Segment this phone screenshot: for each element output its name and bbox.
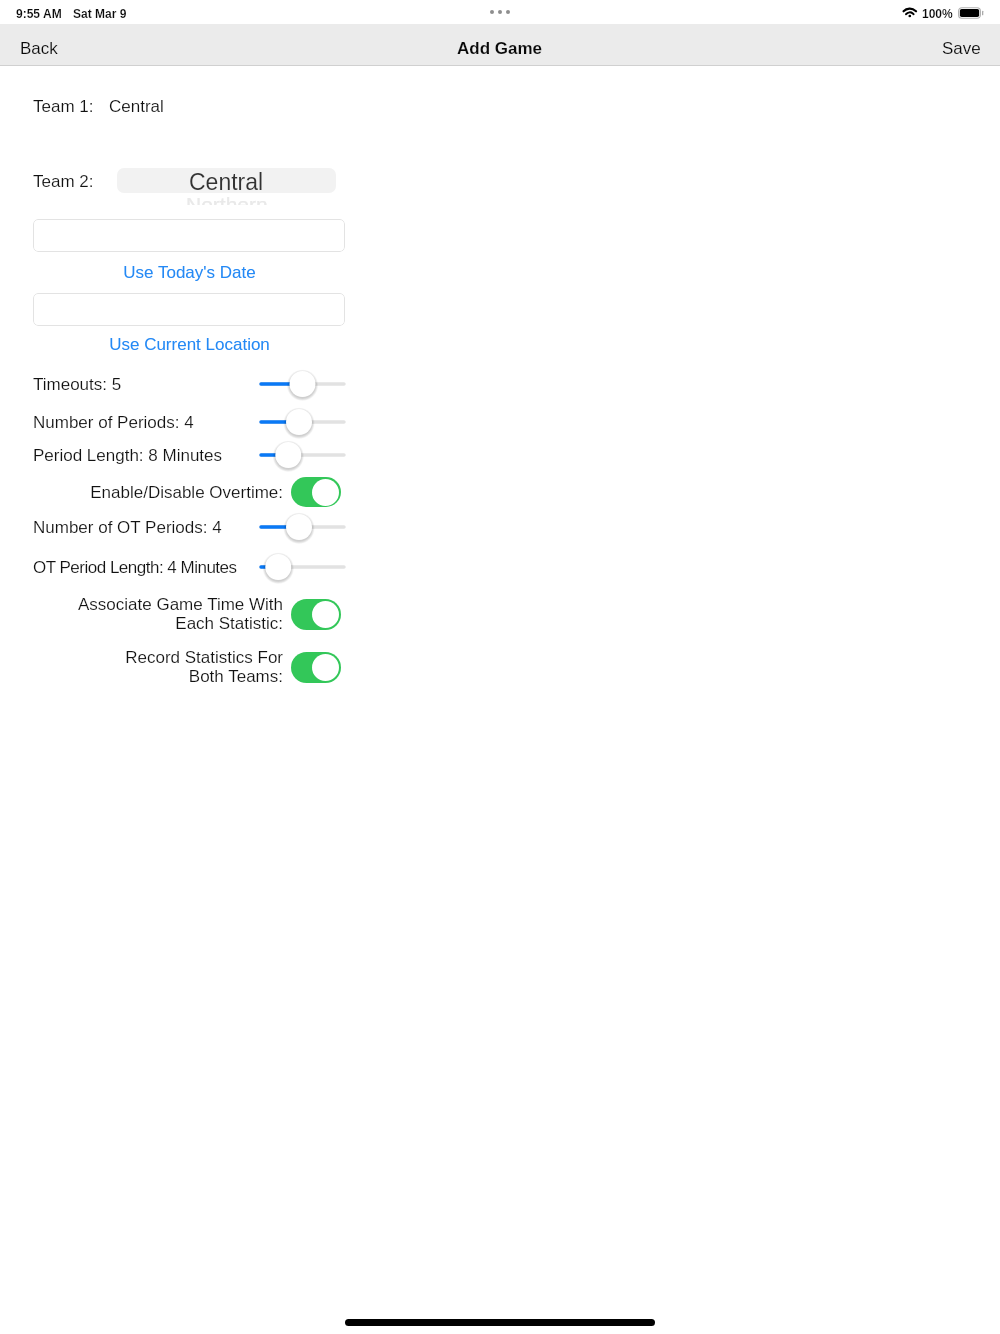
button[interactable] <box>33 219 345 252</box>
staticText: Use Today's Date <box>123 263 256 282</box>
button[interactable] <box>33 293 345 326</box>
button[interactable]: Enable/Disable Overtime: <box>291 477 341 507</box>
button[interactable]: Central <box>117 168 336 193</box>
staticText: AM <box>43 7 62 20</box>
staticText: Back <box>20 39 58 58</box>
button[interactable]: Period Length: 8 Minutes <box>248 440 357 470</box>
button[interactable]: Use Current Location <box>33 331 345 357</box>
staticText: Enable/Disable Overtime: <box>90 483 283 502</box>
staticText: Use Current Location <box>109 335 270 354</box>
button[interactable]: Number of Periods: 4 <box>248 407 357 437</box>
staticText: Number of Periods: 4 <box>33 413 194 432</box>
button[interactable]: Save <box>922 30 1000 67</box>
button[interactable]: OT Period Length: 4 Minutes <box>248 552 357 582</box>
staticText: Both Teams: <box>188 667 283 686</box>
staticText: Save <box>942 39 981 58</box>
staticText: Associate Game Time With <box>77 595 283 614</box>
staticText: Add Game <box>457 39 543 58</box>
staticText: Period Length: 8 Minutes <box>33 446 223 465</box>
staticText: Northern <box>186 193 268 205</box>
staticText: OT Period Length: 4 Minutes <box>33 558 237 577</box>
button[interactable]: Timeouts: 5 <box>248 369 357 399</box>
staticText: 9:55 <box>16 7 41 20</box>
staticText: Team 1: <box>33 97 94 116</box>
staticText: Central <box>109 97 164 116</box>
staticText: Number of OT Periods: 4 <box>33 518 222 537</box>
button[interactable]: Back <box>0 30 78 67</box>
staticText: Central <box>189 169 264 193</box>
button[interactable]: Use Today's Date <box>33 259 345 285</box>
staticText: Each Statistic: <box>175 614 283 633</box>
button[interactable]: Record Statistics For Both Teams: <box>291 652 341 683</box>
button[interactable]: Associate Game Time With Each Statistic: <box>291 599 341 630</box>
staticText: 100% <box>922 7 953 20</box>
button[interactable]: Number of OT Periods: 4 <box>248 512 357 542</box>
staticText: Team 2: <box>33 172 94 191</box>
staticText: Timeouts: 5 <box>33 375 122 394</box>
staticText: Sat Mar 9 <box>73 7 127 20</box>
staticText: Record Statistics For <box>125 648 283 667</box>
